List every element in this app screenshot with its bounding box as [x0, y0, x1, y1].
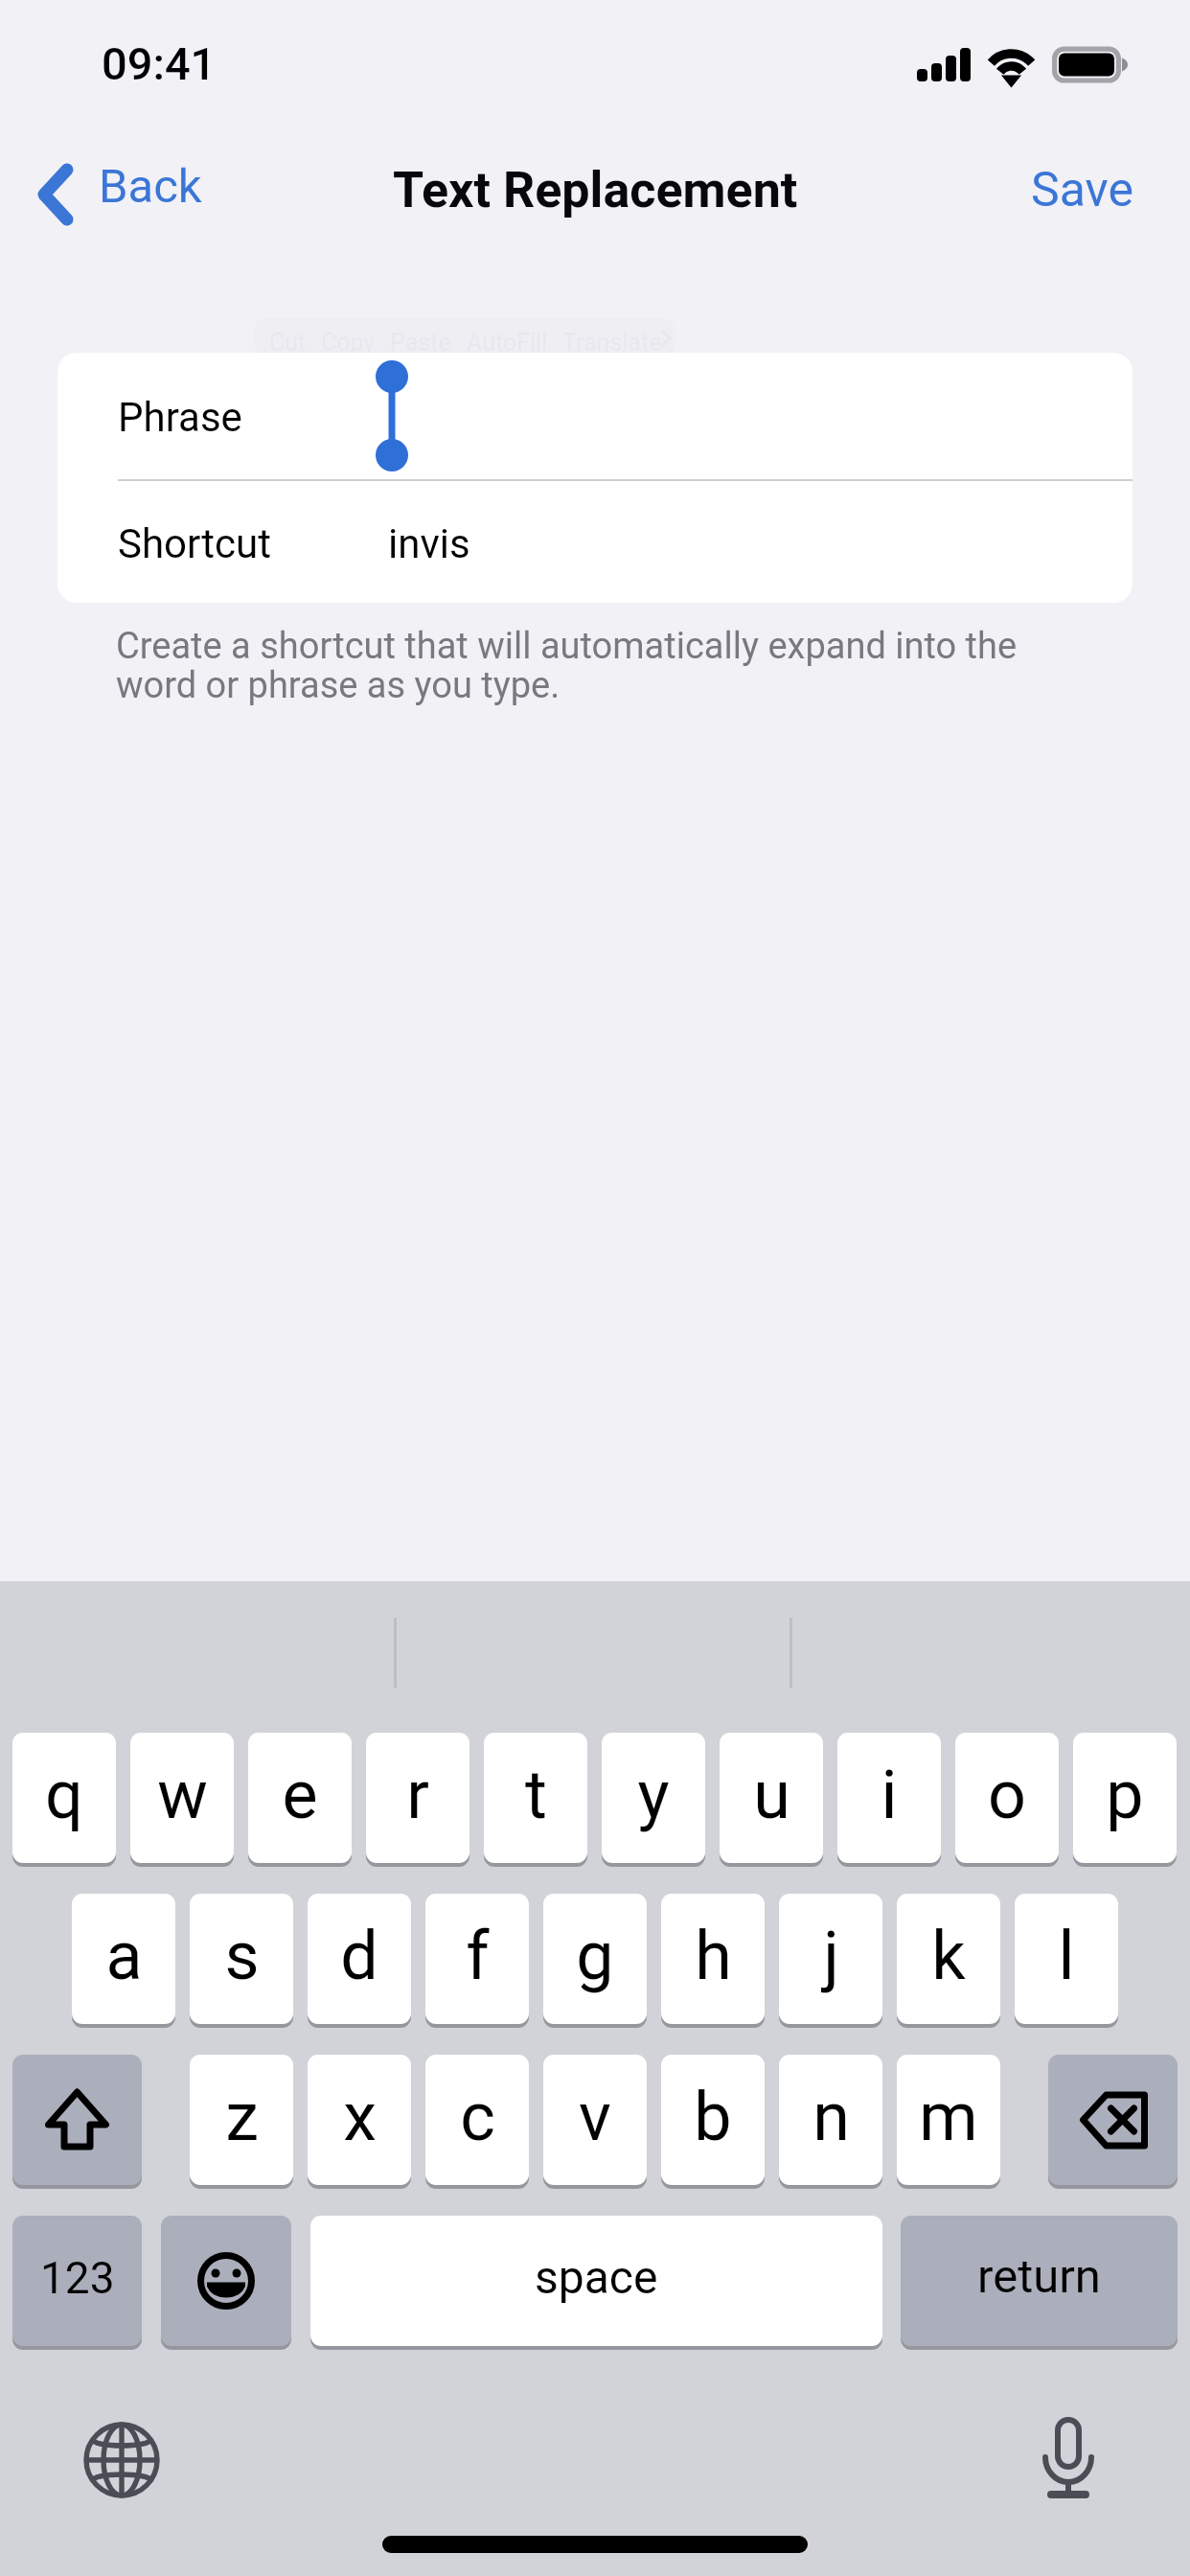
- staticText: Text Replacement: [393, 161, 798, 219]
- staticText: b: [694, 2078, 732, 2156]
- staticText: 09:41: [102, 37, 217, 90]
- staticText: l: [1058, 1917, 1075, 1995]
- button[interactable]: h: [661, 1894, 765, 2024]
- staticText: Copy: [321, 329, 376, 356]
- staticText: Phrase: [118, 394, 242, 441]
- button[interactable]: 123: [12, 2216, 142, 2346]
- button[interactable]: w: [130, 1733, 234, 1863]
- staticText: k: [931, 1917, 966, 1995]
- button[interactable]: r: [366, 1733, 469, 1863]
- staticText: i: [881, 1756, 898, 1834]
- button[interactable]: Save: [996, 146, 1161, 234]
- button[interactable]: Back: [23, 146, 234, 234]
- button[interactable]: Shortcut: [57, 481, 1133, 603]
- button[interactable]: p: [1073, 1733, 1177, 1863]
- button[interactable]: e: [248, 1733, 352, 1863]
- staticText: y: [637, 1756, 670, 1834]
- button[interactable]: z: [190, 2055, 293, 2185]
- staticText: Translate: [562, 329, 662, 356]
- button[interactable]: m: [897, 2055, 1000, 2185]
- staticText: u: [753, 1756, 790, 1834]
- staticText: n: [812, 2078, 850, 2156]
- staticText: Shortcut: [118, 520, 271, 567]
- staticText: p: [1106, 1756, 1144, 1834]
- staticText: g: [576, 1917, 614, 1995]
- button[interactable]: k: [897, 1894, 1000, 2024]
- staticText: Back: [99, 159, 202, 214]
- staticText: j: [823, 1917, 839, 1995]
- staticText: space: [535, 2250, 658, 2304]
- staticText: t: [525, 1756, 547, 1834]
- staticText: q: [45, 1756, 83, 1834]
- staticText: Save: [1031, 162, 1133, 218]
- button[interactable]: g: [543, 1894, 647, 2024]
- button[interactable]: x: [308, 2055, 411, 2185]
- button[interactable]: o: [955, 1733, 1059, 1863]
- staticText: Paste: [390, 329, 451, 356]
- button[interactable]: i: [837, 1733, 941, 1863]
- staticText: f: [466, 1917, 490, 1995]
- staticText: r: [406, 1756, 429, 1834]
- staticText: 123: [40, 2252, 115, 2304]
- button[interactable]: u: [720, 1733, 823, 1863]
- staticText: Create a shortcut that will automaticall…: [116, 625, 1045, 707]
- staticText: o: [988, 1756, 1026, 1834]
- staticText: a: [105, 1917, 143, 1995]
- button[interactable]: return: [901, 2216, 1178, 2346]
- button[interactable]: s: [190, 1894, 293, 2024]
- staticText: w: [157, 1756, 208, 1834]
- button[interactable]: space: [310, 2216, 882, 2346]
- button[interactable]: Shift: [12, 2055, 142, 2185]
- staticText: h: [695, 1917, 732, 1995]
- button[interactable]: j: [779, 1894, 882, 2024]
- staticText: e: [282, 1756, 318, 1834]
- button[interactable]: Phrase: [57, 353, 1133, 479]
- button[interactable]: n: [779, 2055, 882, 2185]
- staticText: s: [224, 1917, 260, 1995]
- button[interactable]: f: [425, 1894, 529, 2024]
- staticText: return: [977, 2249, 1101, 2304]
- button[interactable]: v: [543, 2055, 647, 2185]
- staticText: c: [460, 2078, 495, 2156]
- button[interactable]: Emoji: [161, 2216, 291, 2346]
- button[interactable]: l: [1015, 1894, 1118, 2024]
- staticText: z: [225, 2078, 259, 2156]
- button[interactable]: t: [484, 1733, 587, 1863]
- staticText: AutoFill: [467, 329, 548, 356]
- staticText: m: [919, 2078, 978, 2156]
- staticText: v: [579, 2078, 611, 2156]
- button[interactable]: a: [72, 1894, 175, 2024]
- staticText: d: [340, 1917, 378, 1995]
- button[interactable]: q: [12, 1733, 116, 1863]
- staticText: invis: [388, 520, 470, 567]
- button[interactable]: Delete: [1048, 2055, 1178, 2185]
- staticText: x: [343, 2078, 377, 2156]
- button[interactable]: c: [425, 2055, 529, 2185]
- button[interactable]: d: [308, 1894, 411, 2024]
- button[interactable]: Dictation: [1016, 2405, 1121, 2511]
- staticText: Cut: [269, 329, 307, 356]
- button[interactable]: b: [661, 2055, 765, 2185]
- button[interactable]: Next keyboard: [69, 2407, 174, 2513]
- button[interactable]: y: [602, 1733, 705, 1863]
